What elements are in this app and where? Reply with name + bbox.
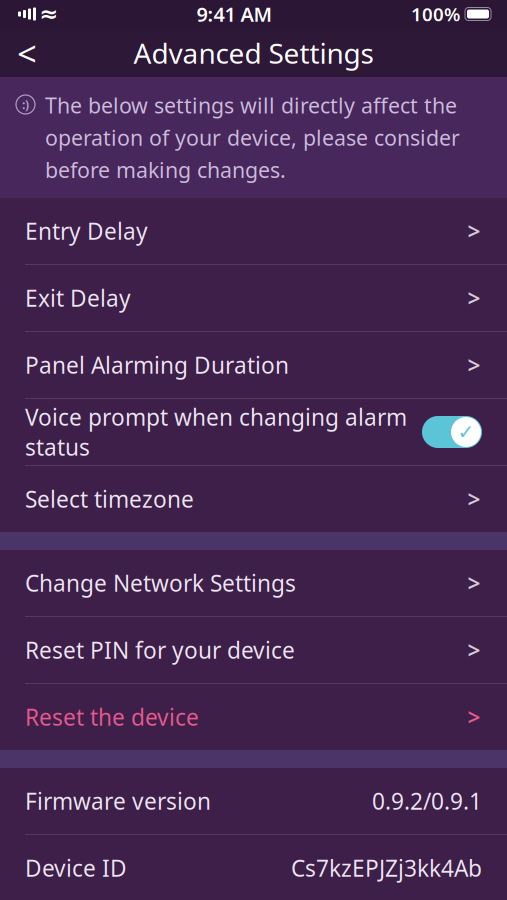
staticText: Panel Alarming Duration xyxy=(25,350,289,380)
staticText: > xyxy=(467,635,480,665)
staticText: > xyxy=(467,702,480,732)
staticText: Advanced Settings xyxy=(133,34,373,72)
staticText: Cs7kzEPJZj3kk4Ab xyxy=(291,853,482,883)
button[interactable]: Entry Delay xyxy=(0,198,507,264)
staticText: Firmware version xyxy=(25,786,211,816)
staticText: 100% xyxy=(411,2,460,26)
button[interactable]: Change Network Settings xyxy=(0,550,507,616)
staticText: > xyxy=(467,484,480,514)
button[interactable]: Panel Alarming Duration xyxy=(0,332,507,398)
staticText: :) xyxy=(22,96,29,112)
staticText: ≈ xyxy=(39,1,58,27)
button[interactable]: Voice prompt when changing alarm status xyxy=(0,399,507,465)
button[interactable]: Exit Delay xyxy=(0,265,507,331)
staticText: > xyxy=(467,568,480,598)
staticText: > xyxy=(467,283,480,313)
button[interactable]: Back xyxy=(0,30,40,76)
staticText: > xyxy=(467,350,480,380)
staticText: 9:41 AM xyxy=(196,1,272,27)
button[interactable]: Select timezone xyxy=(0,466,507,532)
staticText: < xyxy=(17,30,37,76)
staticText: 0.9.2/0.9.1 xyxy=(372,786,482,816)
staticText: > xyxy=(467,216,480,246)
staticText: The below settings will directly affect … xyxy=(45,91,460,184)
staticText: Entry Delay xyxy=(25,216,148,246)
staticText: Exit Delay xyxy=(25,283,131,313)
staticText: Reset PIN for your device xyxy=(25,635,295,665)
staticText: Select timezone xyxy=(25,484,194,514)
staticText: ✓ xyxy=(457,421,474,443)
staticText: Voice prompt when changing alarm status xyxy=(25,402,407,462)
button[interactable]: Reset PIN for your device xyxy=(0,617,507,683)
button[interactable]: Reset the device xyxy=(0,684,507,750)
staticText: Change Network Settings xyxy=(25,568,296,598)
staticText: Reset the device xyxy=(25,702,199,732)
staticText: Device ID xyxy=(25,853,127,883)
